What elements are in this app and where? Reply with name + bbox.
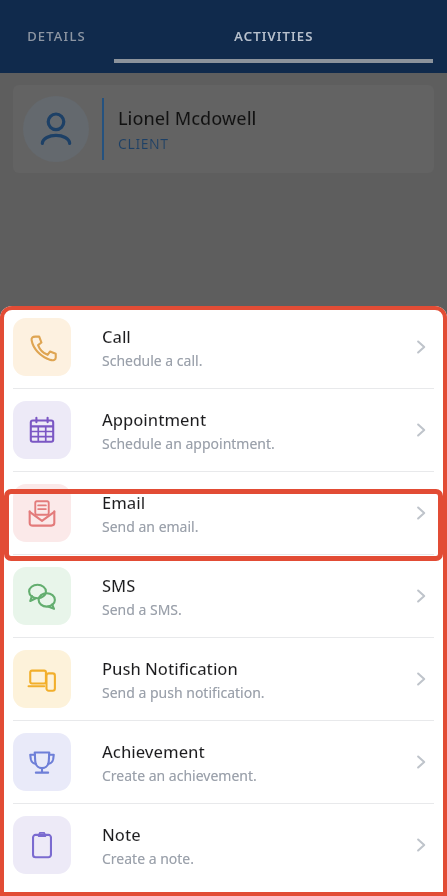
- button[interactable]: ACTIVITIES: [100, 0, 447, 63]
- button[interactable]: Achievement: [0, 721, 447, 803]
- staticText: Achievement: [102, 740, 205, 762]
- staticText: ACTIVITIES: [234, 27, 314, 45]
- other: Push Notification: [408, 666, 434, 692]
- other: Achievement: [408, 749, 434, 775]
- staticText: Email: [102, 491, 146, 513]
- staticText: CLIENT: [118, 134, 169, 153]
- button[interactable]: Email: [0, 472, 447, 554]
- button[interactable]: Push Notification: [0, 638, 447, 720]
- button[interactable]: DETAILS: [13, 0, 100, 59]
- staticText: DETAILS: [27, 27, 86, 45]
- staticText: SMS: [102, 574, 136, 596]
- other: Email: [408, 500, 434, 526]
- button[interactable]: SMS: [0, 555, 447, 637]
- staticText: Call: [102, 325, 131, 347]
- staticText: Create a note.: [102, 849, 195, 868]
- other: Call: [408, 334, 434, 360]
- other: SMS: [408, 583, 434, 609]
- button[interactable]: Lionel Mcdowell: [13, 85, 434, 173]
- button[interactable]: Note: [0, 804, 447, 886]
- other: Appointment: [408, 417, 434, 443]
- staticText: Send a SMS.: [102, 600, 182, 619]
- staticText: Appointment: [102, 408, 207, 430]
- button[interactable]: Appointment: [0, 389, 447, 471]
- staticText: Create an achievement.: [102, 766, 257, 785]
- staticText: Note: [102, 823, 141, 845]
- button[interactable]: Call: [0, 306, 447, 388]
- staticText: Schedule a call.: [102, 351, 203, 370]
- staticText: Send an email.: [102, 517, 199, 536]
- other: Note: [408, 832, 434, 858]
- staticText: Push Notification: [102, 657, 238, 679]
- staticText: Schedule an appointment.: [102, 434, 275, 453]
- staticText: Lionel Mcdowell: [118, 106, 257, 131]
- staticText: Send a push notification.: [102, 683, 265, 702]
